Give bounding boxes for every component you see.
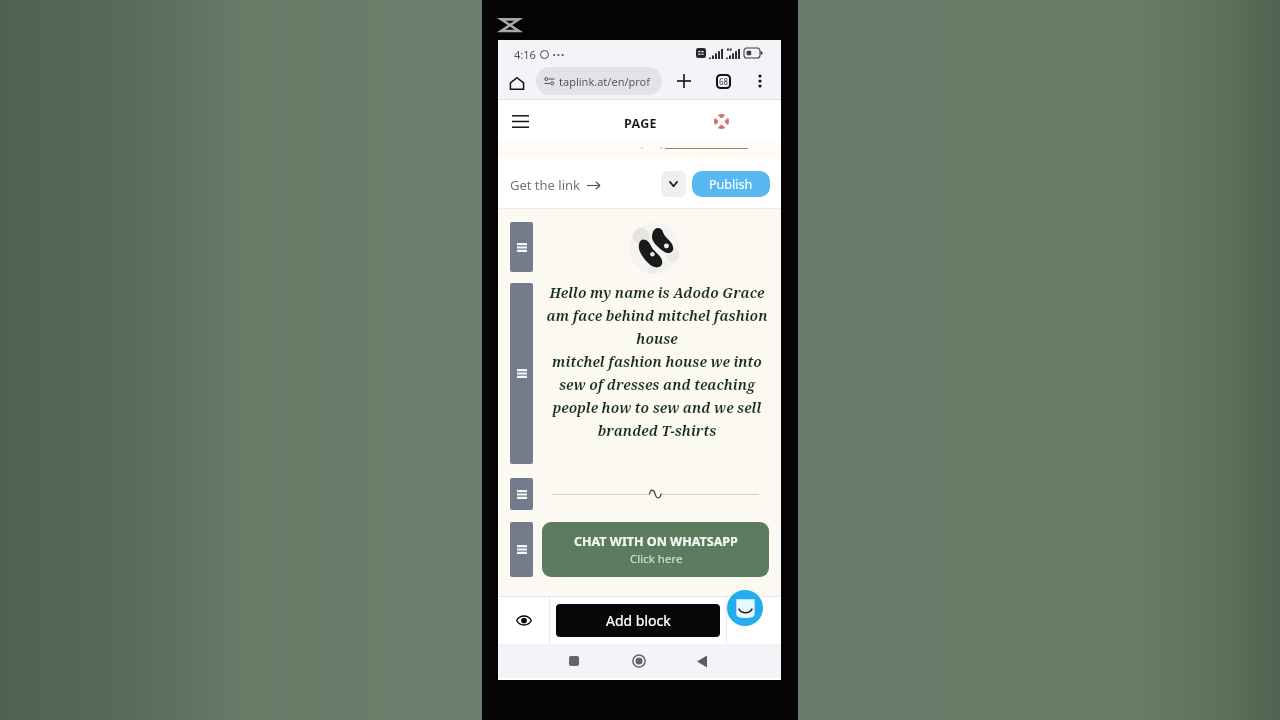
- staticText: CHAT WITH ON WHATSAPP: [574, 533, 738, 550]
- staticText: 4:16: [514, 47, 536, 62]
- button[interactable]: taplink.at/en/prof: [536, 67, 662, 95]
- button[interactable]: Drag block: [510, 522, 533, 577]
- button[interactable]: Home: [506, 72, 528, 94]
- button[interactable]: Drag block: [510, 222, 533, 272]
- button[interactable]: Add block: [556, 604, 720, 637]
- button[interactable]: Expand: [661, 171, 686, 197]
- button[interactable]: Open chat: [727, 590, 763, 626]
- button[interactable]: Drag block: [510, 478, 533, 510]
- button[interactable]: Home: [625, 647, 653, 675]
- button[interactable]: Tabs: [712, 70, 734, 92]
- button[interactable]: Help: [709, 109, 733, 133]
- staticText: taplink.at/en/prof: [559, 74, 651, 89]
- staticText: Publish: [709, 176, 753, 193]
- button[interactable]: Publish: [692, 171, 770, 197]
- button[interactable]: CHAT WITH ON WHATSAPP: [542, 522, 769, 577]
- button[interactable]: Recents: [560, 647, 588, 675]
- staticText: Click here: [630, 551, 683, 567]
- staticText: 68: [719, 76, 729, 87]
- button[interactable]: New tab: [673, 70, 695, 92]
- button[interactable]: Preview: [498, 596, 549, 644]
- button[interactable]: Menu: [507, 108, 533, 134]
- staticText: Get the link: [510, 176, 580, 194]
- button[interactable]: More options: [750, 71, 770, 91]
- button[interactable]: Drag block: [510, 283, 533, 464]
- staticText: PAGE: [624, 115, 657, 132]
- staticText: Hello my name is Adodo Grace am face beh…: [539, 283, 775, 440]
- staticText: Add block: [606, 611, 671, 630]
- button[interactable]: Back: [688, 647, 716, 675]
- button[interactable]: Get the link: [510, 176, 600, 194]
